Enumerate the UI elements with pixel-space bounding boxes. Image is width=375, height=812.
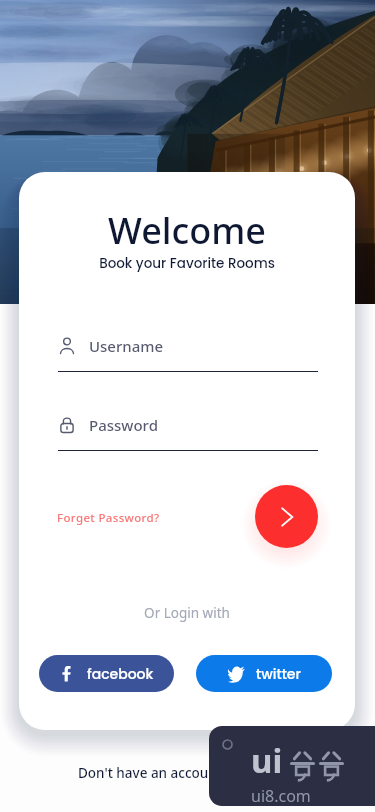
staticText: facebook: [87, 664, 154, 684]
staticText: Don't have an account?: [78, 764, 232, 782]
button[interactable]: Don't have an account?: [78, 761, 282, 785]
staticText: Book your Favorite Rooms: [19, 254, 355, 273]
staticText: twitter: [256, 664, 301, 684]
staticText: Password: [89, 415, 158, 435]
button[interactable]: facebook: [39, 655, 174, 692]
staticText: Sign up: [232, 764, 282, 782]
staticText: ui8.com: [251, 785, 311, 806]
staticText: ui: [251, 738, 283, 783]
staticText: Welcome: [19, 206, 355, 255]
button[interactable]: Log in: [255, 485, 318, 548]
staticText: Username: [89, 336, 164, 356]
button[interactable]: Forget Password?: [55, 504, 162, 532]
button[interactable]: twitter: [196, 655, 332, 692]
staticText: Or Login with: [19, 604, 355, 622]
staticText: Forget Password?: [57, 510, 160, 526]
